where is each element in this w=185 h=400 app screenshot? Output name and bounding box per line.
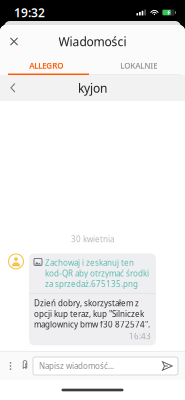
staticText: 16:43: [129, 331, 151, 341]
button[interactable]: Back: [2, 78, 24, 98]
staticText: Napisz wiadomość...: [39, 361, 114, 371]
staticText: 30 kwietnia: [71, 234, 114, 244]
button[interactable]: More options: [3, 355, 18, 377]
button[interactable]: Attach file: [18, 355, 33, 377]
staticText: Zachowaj i zeskanuj ten kod-QR aby otrzy…: [45, 257, 149, 289]
staticText: ALLEGRO: [29, 60, 63, 71]
staticText: Wiadomości: [58, 33, 126, 49]
staticText: Dzień dobry, skorzystałem z opcji kup te…: [34, 298, 150, 330]
staticText: kyjon: [78, 80, 107, 96]
staticText: LOKALNIE: [120, 60, 157, 71]
button[interactable]: Close: [3, 30, 25, 52]
staticText: 19:32: [14, 4, 45, 20]
button[interactable]: LOKALNIE: [92, 60, 185, 71]
button[interactable]: ALLEGRO: [0, 60, 92, 71]
button[interactable]: Message field: [33, 357, 178, 375]
